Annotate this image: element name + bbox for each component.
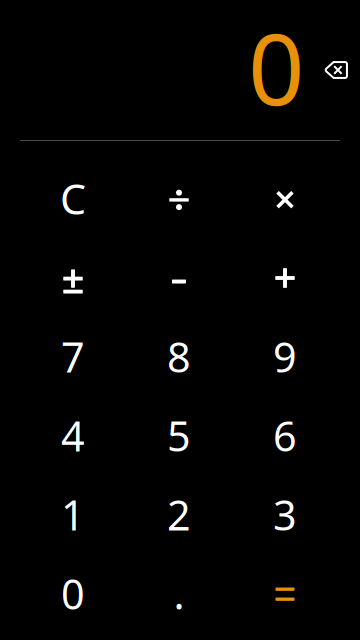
staticText: 1 [61,487,85,542]
button[interactable]: Delete [314,48,358,92]
button[interactable]: 9 [232,317,338,396]
button[interactable]: 6 [232,396,338,475]
staticText: 3 [273,487,297,542]
button[interactable]: 3 [232,475,338,554]
button[interactable]: 5 [126,396,232,475]
button[interactable]: Plus or minus [20,238,126,317]
staticText: 0 [61,566,85,621]
staticText: 9 [273,329,297,384]
staticText: 7 [61,329,85,384]
button[interactable]: 8 [126,317,232,396]
button[interactable]: 2 [126,475,232,554]
staticText: C [60,171,86,226]
button[interactable]: 7 [20,317,126,396]
button[interactable]: . [126,554,232,633]
button[interactable]: Multiply [232,159,338,238]
staticText: 8 [167,329,191,384]
button[interactable]: 1 [20,475,126,554]
staticText: 6 [273,408,297,463]
button[interactable]: Divide [126,159,232,238]
button[interactable]: C [20,159,126,238]
staticText: 0 [248,1,304,132]
button[interactable]: Plus [232,238,338,317]
button[interactable]: Minus [126,238,232,317]
staticText: 5 [167,408,191,463]
button[interactable]: Equals [232,554,338,633]
staticText: . [173,566,184,621]
button[interactable]: 4 [20,396,126,475]
staticText: 4 [61,408,85,463]
staticText: 2 [167,487,191,542]
button[interactable]: 0 [20,554,126,633]
